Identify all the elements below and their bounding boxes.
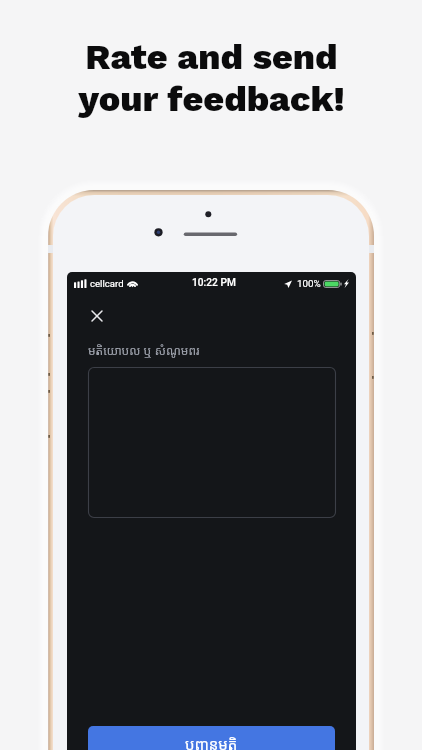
staticText: your feedback! (78, 78, 345, 120)
staticText: មតិយោបល ឬ សំណូមពរ (88, 342, 200, 358)
staticText: cellcard (90, 278, 124, 289)
button[interactable]: Close (84, 303, 110, 329)
button[interactable] (88, 367, 336, 518)
staticText: Rate and send (85, 36, 338, 78)
button[interactable]: បញ្ជូនមតិ (88, 726, 335, 750)
staticText: 10:22 PM (192, 277, 236, 289)
staticText: បញ្ជូនមតិ (185, 734, 238, 750)
staticText: 100% (297, 278, 321, 289)
